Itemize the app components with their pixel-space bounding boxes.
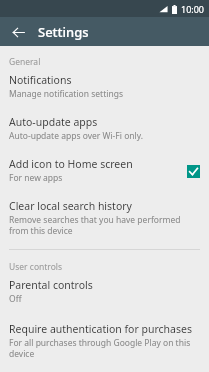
button[interactable]: Parental controls: [0, 275, 209, 308]
button[interactable]: Back: [5, 19, 31, 45]
staticText: Require authentication for purchases: [9, 322, 192, 336]
staticText: For all purchases through Google Play on…: [9, 337, 200, 359]
staticText: 10:00: [181, 3, 205, 15]
button[interactable]: Require authentication for purchases: [0, 319, 209, 362]
staticText: General: [9, 56, 41, 68]
staticText: Notifications: [9, 73, 72, 87]
staticText: User controls: [9, 261, 63, 273]
button[interactable]: Clear local search history: [0, 196, 209, 239]
staticText: Parental controls: [9, 278, 93, 292]
staticText: Auto-update apps: [9, 115, 98, 129]
button[interactable]: Add icon to Home screen checkbox: [184, 162, 202, 180]
staticText: Off: [9, 293, 22, 305]
staticText: Add icon to Home screen: [9, 157, 133, 171]
button[interactable]: Notifications: [0, 70, 209, 103]
staticText: Settings: [38, 23, 89, 41]
staticText: For new apps: [9, 172, 63, 184]
staticText: Manage notification settings: [9, 88, 123, 100]
staticText: Clear local search history: [9, 199, 132, 213]
button[interactable]: Auto-update apps: [0, 112, 209, 145]
button[interactable]: Add icon to Home screen: [0, 154, 209, 187]
staticText: Remove searches that you have performed …: [9, 214, 200, 236]
staticText: Auto-update apps over Wi-Fi only.: [9, 130, 144, 142]
